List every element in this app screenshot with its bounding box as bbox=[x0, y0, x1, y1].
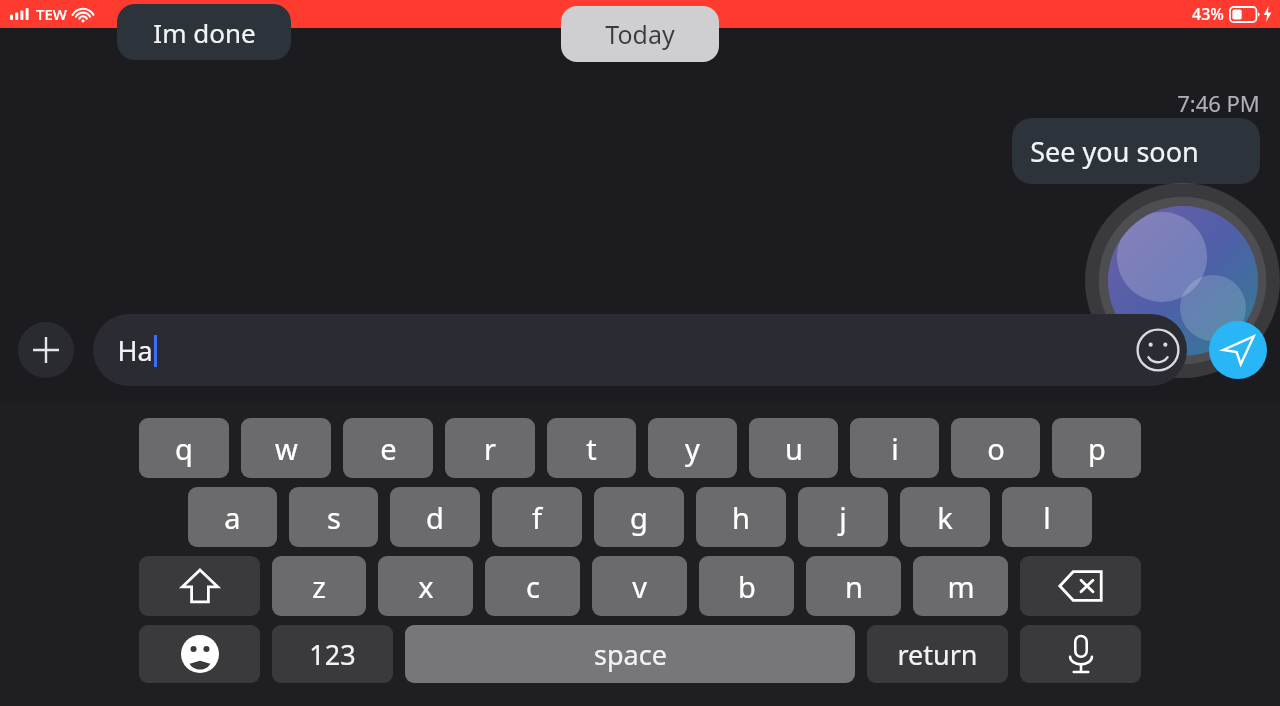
button[interactable]: n bbox=[806, 556, 901, 616]
button[interactable]: space bbox=[405, 625, 855, 683]
button[interactable]: b bbox=[699, 556, 794, 616]
button[interactable]: return bbox=[867, 625, 1008, 683]
staticText: g bbox=[630, 498, 648, 537]
button[interactable]: Send bbox=[1209, 321, 1267, 379]
button[interactable]: Add attachment bbox=[18, 322, 74, 378]
staticText: Ha bbox=[117, 332, 153, 369]
staticText: c bbox=[526, 567, 540, 606]
staticText: a bbox=[224, 498, 241, 537]
staticText: l bbox=[1043, 498, 1051, 537]
staticText: q bbox=[175, 429, 193, 468]
staticText: y bbox=[685, 429, 700, 468]
button[interactable]: a bbox=[188, 487, 277, 547]
button[interactable]: m bbox=[913, 556, 1008, 616]
button[interactable]: Ha bbox=[93, 314, 1187, 386]
staticText: b bbox=[738, 567, 756, 606]
staticText: return bbox=[897, 636, 978, 673]
staticText: w bbox=[275, 429, 298, 468]
staticText: e bbox=[380, 429, 397, 468]
staticText: s bbox=[327, 498, 341, 537]
button[interactable]: p bbox=[1052, 418, 1141, 478]
staticText: r bbox=[484, 429, 496, 468]
staticText: u bbox=[785, 429, 803, 468]
button[interactable]: Im done bbox=[117, 4, 291, 60]
button[interactable]: k bbox=[900, 487, 990, 547]
button[interactable]: w bbox=[241, 418, 331, 478]
staticText: space bbox=[594, 636, 667, 673]
staticText: z bbox=[312, 567, 326, 606]
button[interactable]: s bbox=[289, 487, 378, 547]
staticText: Im done bbox=[153, 15, 256, 50]
staticText: d bbox=[426, 498, 444, 537]
button[interactable]: i bbox=[850, 418, 939, 478]
staticText: See you soon bbox=[1030, 133, 1199, 170]
button[interactable]: Emoji keyboard bbox=[139, 625, 260, 683]
staticText: t bbox=[586, 429, 597, 468]
staticText: o bbox=[987, 429, 1005, 468]
button[interactable]: Backspace bbox=[1020, 556, 1141, 616]
button[interactable]: h bbox=[696, 487, 786, 547]
button[interactable]: x bbox=[378, 556, 473, 616]
staticText: n bbox=[845, 567, 863, 606]
staticText: 43% bbox=[1192, 3, 1224, 25]
staticText: p bbox=[1088, 429, 1106, 468]
button[interactable]: q bbox=[139, 418, 229, 478]
button[interactable]: c bbox=[485, 556, 580, 616]
staticText: 123 bbox=[309, 636, 356, 673]
button[interactable]: y bbox=[648, 418, 737, 478]
button[interactable]: j bbox=[798, 487, 888, 547]
staticText: j bbox=[839, 498, 847, 537]
button[interactable]: See you soon bbox=[1012, 118, 1260, 184]
button[interactable]: Shift bbox=[139, 556, 260, 616]
staticText: v bbox=[632, 567, 647, 606]
staticText: f bbox=[532, 498, 542, 537]
button[interactable]: o bbox=[951, 418, 1040, 478]
button[interactable]: Emoji bbox=[1131, 323, 1185, 377]
staticText: 7:48 PM bbox=[610, 3, 671, 25]
staticText: 7:46 PM bbox=[1177, 88, 1260, 118]
staticText: Today bbox=[605, 17, 675, 51]
button[interactable]: v bbox=[592, 556, 687, 616]
button[interactable]: Voice input bbox=[1020, 625, 1141, 683]
button[interactable]: t bbox=[547, 418, 636, 478]
staticText: m bbox=[947, 567, 975, 606]
button[interactable]: d bbox=[390, 487, 480, 547]
staticText: h bbox=[732, 498, 750, 537]
staticText: x bbox=[418, 567, 434, 606]
button[interactable]: g bbox=[594, 487, 684, 547]
staticText: TEW bbox=[36, 4, 67, 24]
staticText: k bbox=[937, 498, 953, 537]
button[interactable]: r bbox=[445, 418, 535, 478]
button[interactable]: e bbox=[343, 418, 433, 478]
button[interactable]: 123 bbox=[272, 625, 393, 683]
button[interactable]: f bbox=[492, 487, 582, 547]
button[interactable]: u bbox=[749, 418, 838, 478]
button[interactable]: Video preview bbox=[1108, 206, 1258, 356]
button[interactable]: l bbox=[1002, 487, 1092, 547]
button[interactable]: z bbox=[272, 556, 366, 616]
staticText: i bbox=[891, 429, 899, 468]
